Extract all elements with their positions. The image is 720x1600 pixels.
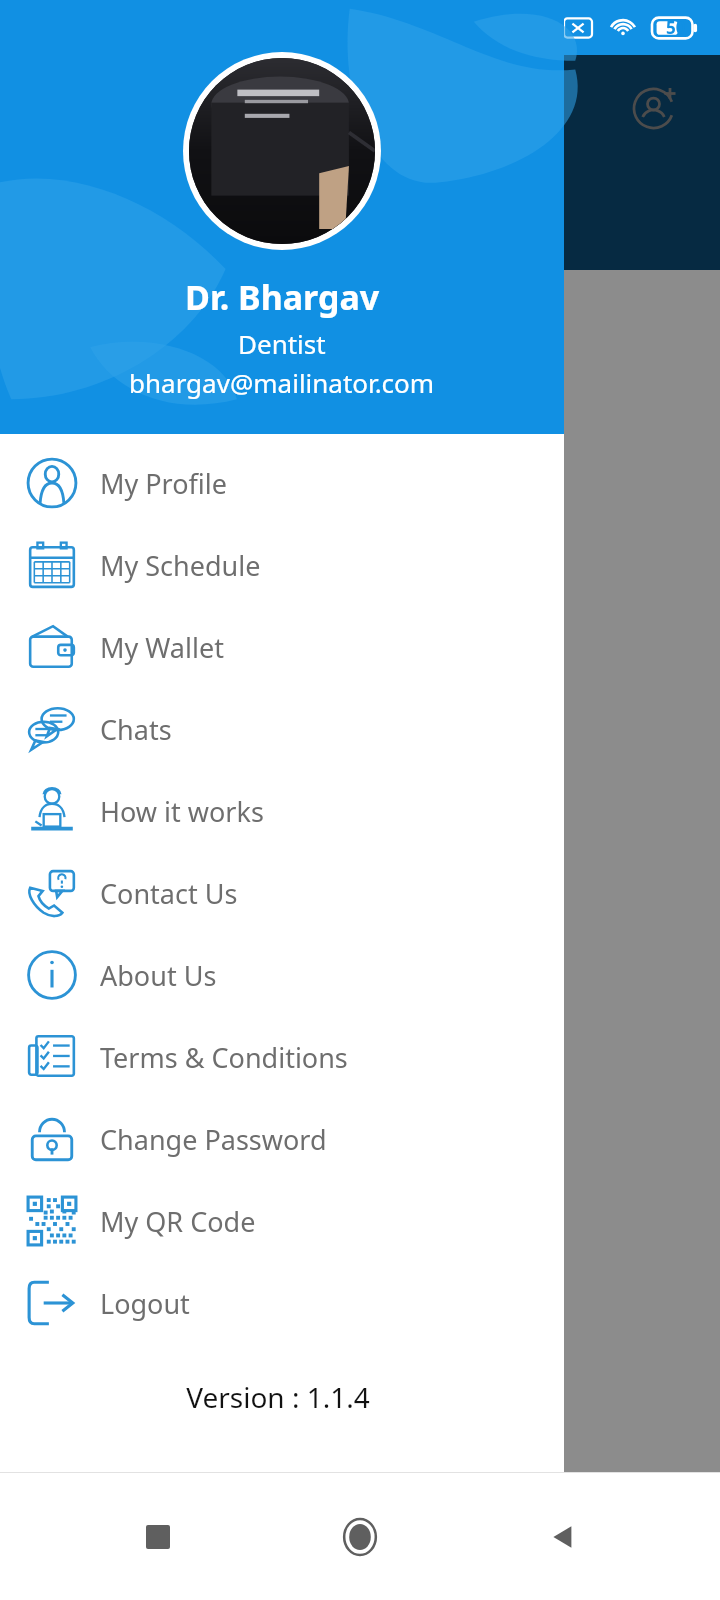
staticText: My QR Code	[100, 1203, 256, 1240]
staticText: Chats	[100, 711, 172, 748]
button[interactable]: Change Password	[0, 1098, 564, 1180]
button[interactable]: Chats	[0, 688, 564, 770]
button[interactable]: Home	[315, 1492, 405, 1582]
staticText: Upcoming Appointments	[174, 310, 481, 345]
button[interactable]: Contact Us	[0, 852, 564, 934]
button[interactable]: Upcoming Appointments	[40, 310, 680, 534]
staticText: Change Password	[100, 1121, 327, 1158]
staticText: Dr. Bhargav	[185, 274, 380, 320]
button[interactable]: My QR Code	[0, 1180, 564, 1262]
staticText: My Wallet	[100, 629, 224, 666]
staticText: My Schedule	[100, 547, 261, 584]
button[interactable]: Recents	[113, 1492, 203, 1582]
staticText: Logout	[100, 1285, 190, 1322]
button[interactable]: My Profile	[0, 442, 564, 524]
button[interactable]: Back	[518, 1492, 608, 1582]
staticText: About Us	[100, 957, 217, 994]
button[interactable]: Past Appointments	[40, 570, 680, 794]
staticText: Dentist	[238, 326, 326, 361]
button[interactable]: About Us	[0, 934, 564, 1016]
button[interactable]: Requests	[40, 830, 680, 1054]
staticText: My Profile	[100, 465, 228, 502]
button[interactable]: Add patient	[624, 77, 688, 141]
staticText: bhargav@mailinator.com	[129, 365, 435, 400]
staticText: How it works	[100, 793, 264, 830]
button[interactable]: How it works	[0, 770, 564, 852]
button[interactable]: Logout	[0, 1262, 564, 1344]
staticText: Terms & Conditions	[100, 1039, 348, 1076]
staticText: Version : 1.1.4	[0, 1378, 556, 1416]
staticText: Past Appointments	[174, 570, 407, 605]
staticText: Contact Us	[100, 875, 238, 912]
button[interactable]: My Wallet	[0, 606, 564, 688]
staticText: 50	[666, 16, 686, 39]
button[interactable]: My Schedule	[0, 524, 564, 606]
button[interactable]: Terms & Conditions	[0, 1016, 564, 1098]
